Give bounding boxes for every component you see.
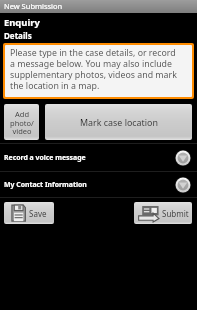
staticText: New Submission xyxy=(4,1,63,11)
button[interactable]: My Contact Information xyxy=(0,172,197,197)
button[interactable]: Add photo/ video xyxy=(4,104,39,140)
other: Expand section xyxy=(175,177,191,193)
staticText: My Contact Information xyxy=(4,180,87,189)
button[interactable]: Save xyxy=(4,202,54,224)
staticText: Enquiry xyxy=(4,16,40,29)
other: Expand section xyxy=(175,150,191,166)
button[interactable]: Mark case location xyxy=(45,104,192,140)
staticText: Record a voice message xyxy=(4,153,86,162)
button[interactable]: Record a voice message xyxy=(0,144,197,171)
staticText: Submit xyxy=(162,208,189,219)
button[interactable]: Submit xyxy=(134,202,192,224)
staticText: Save xyxy=(29,208,47,219)
staticText: Please type in the case details, or reco… xyxy=(10,47,180,92)
staticText: Add photo/ video xyxy=(10,109,34,136)
staticText: Mark case location xyxy=(80,116,158,128)
staticText: Details xyxy=(4,30,32,41)
